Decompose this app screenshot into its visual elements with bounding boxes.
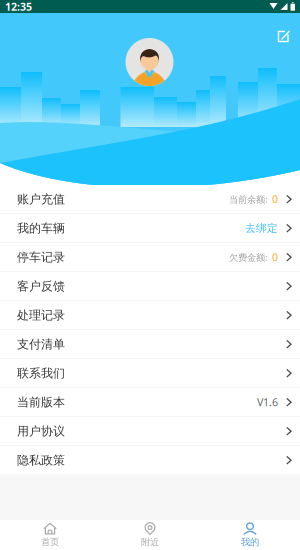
staticText: 隐私政策 xyxy=(17,453,65,467)
button[interactable]: 我的 xyxy=(200,520,300,550)
button[interactable]: 隐私政策 xyxy=(0,446,300,474)
button[interactable]: 客户反馈 xyxy=(0,272,300,301)
staticText: 当前余额: xyxy=(229,193,268,205)
staticText: 0 xyxy=(272,250,278,264)
staticText: 处理记录 xyxy=(17,308,65,322)
button[interactable]: 联系我们 xyxy=(0,359,300,388)
staticText: V1.6 xyxy=(257,395,278,409)
button[interactable]: 我的车辆 xyxy=(0,214,300,243)
staticText: 支付清单 xyxy=(17,337,65,351)
staticText: 客户反馈 xyxy=(17,279,65,293)
staticText: 当前版本 xyxy=(17,395,65,409)
button[interactable]: 支付清单 xyxy=(0,330,300,359)
staticText: 我的车辆 xyxy=(17,221,65,235)
staticText: 用户协议 xyxy=(17,424,65,438)
button[interactable]: 首页 xyxy=(0,520,100,550)
button[interactable]: 附近 xyxy=(100,520,200,550)
staticText: 去绑定 xyxy=(245,222,278,235)
button[interactable]: 账户充值 xyxy=(0,185,300,214)
button[interactable]: 停车记录 xyxy=(0,243,300,272)
staticText: 欠费金额: xyxy=(229,251,268,263)
staticText: 12:35 xyxy=(5,0,32,14)
staticText: 首页 xyxy=(41,536,59,548)
button[interactable]: 处理记录 xyxy=(0,301,300,330)
staticText: 账户充值 xyxy=(17,192,65,206)
staticText: 附近 xyxy=(141,536,159,548)
staticText: 0 xyxy=(272,192,278,206)
staticText: 我的 xyxy=(241,536,259,548)
button[interactable]: 用户协议 xyxy=(0,417,300,446)
button[interactable]: Edit profile xyxy=(272,25,296,49)
staticText: 停车记录 xyxy=(17,250,65,264)
button[interactable]: 当前版本 xyxy=(0,388,300,417)
staticText: 联系我们 xyxy=(17,366,65,380)
